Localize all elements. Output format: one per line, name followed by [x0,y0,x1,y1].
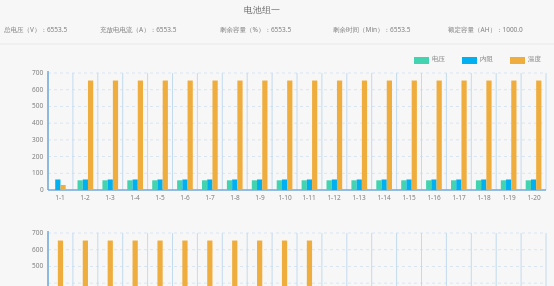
staticText: 1-18 [477,193,491,202]
staticText: 总电压（V）：6553.5 [4,25,68,34]
staticText: 200 [32,152,44,161]
staticText: 1-10 [278,193,292,202]
staticText: 1-13 [352,193,366,202]
staticText: 1-5 [155,193,165,202]
staticText: 1-20 [527,193,541,202]
staticText: 1-12 [327,193,341,202]
staticText: 1-1 [55,193,65,202]
staticText: 1-11 [302,193,316,202]
button[interactable]: 内阻 [462,55,477,63]
staticText: 500 [32,261,44,270]
staticText: 1-6 [180,193,190,202]
button[interactable]: 电压 [414,55,429,63]
staticText: 600 [32,245,44,254]
staticText: 剩余容量（%）：6553.5 [220,25,292,34]
staticText: 700 [32,228,44,237]
button[interactable]: 剩余容量（%）：6553.5 [220,25,292,34]
button[interactable]: 电池组一 [244,4,280,15]
staticText: 1-7 [205,193,215,202]
staticText: 1-17 [452,193,466,202]
button[interactable]: 剩余时间（Min）：6553.5 [333,25,411,34]
staticText: 内阻 [480,55,493,63]
staticText: 500 [32,101,44,110]
staticText: 100 [32,168,44,177]
staticText: 电压 [432,55,445,63]
staticText: 剩余时间（Min）：6553.5 [333,25,411,34]
staticText: 额定容量（AH）：1000.0 [448,25,523,34]
staticText: 1-8 [230,193,240,202]
staticText: 1-9 [255,193,265,202]
staticText: 600 [32,85,44,94]
staticText: 1-14 [377,193,391,202]
button[interactable]: 额定容量（AH）：1000.0 [448,25,523,34]
staticText: 700 [32,68,44,77]
staticText: 400 [32,118,44,127]
staticText: 1-4 [130,193,140,202]
staticText: 1-19 [502,193,516,202]
staticText: 温度 [528,55,541,63]
button[interactable]: 总电压（V）：6553.5 [4,25,68,34]
staticText: 1-16 [427,193,441,202]
staticText: 1-15 [402,193,416,202]
staticText: 充放电电流（A）：6553.5 [100,25,177,34]
button[interactable]: 充放电电流（A）：6553.5 [100,25,177,34]
staticText: 300 [32,135,44,144]
staticText: 1-3 [105,193,115,202]
button[interactable]: 温度 [510,55,525,63]
staticText: 1-2 [80,193,90,202]
staticText: 电池组一 [244,4,280,15]
staticText: 0 [40,185,44,194]
